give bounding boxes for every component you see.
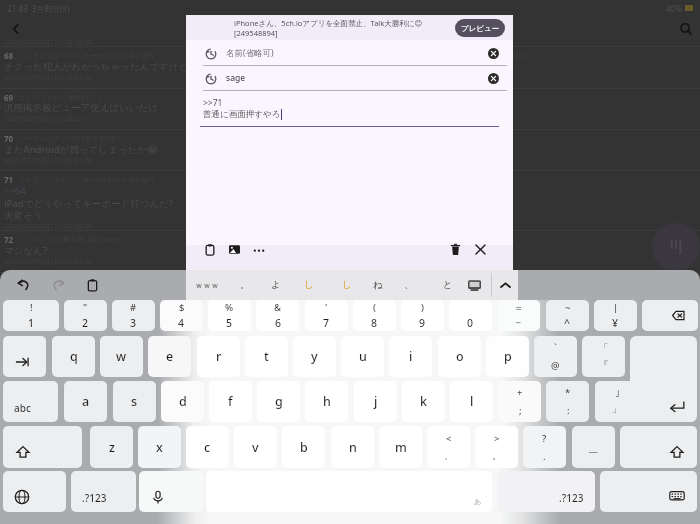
button[interactable]: 72 [0,231,700,272]
button[interactable]: .?123 [497,471,595,512]
button[interactable]: Redo [48,275,68,295]
button[interactable]: p [486,336,529,377]
button[interactable]: abc [3,381,58,422]
staticText: ' [325,301,328,314]
button[interactable]: 69 [0,89,700,129]
button[interactable]: sage [186,68,513,91]
button[interactable]: y [293,336,336,377]
button[interactable]: ( [353,300,396,331]
button[interactable]: o [438,336,481,377]
button[interactable]: Paste [201,241,218,258]
button[interactable]: Close [472,241,489,258]
button[interactable] [600,471,697,512]
button[interactable]: t [245,336,288,377]
staticText: m [395,439,407,456]
button[interactable]: と [435,276,461,294]
staticText: 2026/03/08(日) 21:40:26:46 [4,222,92,232]
button[interactable]: + [498,381,541,422]
staticText: よ [271,279,281,291]
button[interactable]: " [64,300,107,331]
button[interactable]: Emoji [465,276,483,294]
button[interactable]: q [52,336,95,377]
button[interactable] [630,336,697,422]
button[interactable]: ) [401,300,444,331]
button[interactable]: ね [365,276,391,294]
button[interactable]: ` [534,336,577,377]
staticText: < [446,432,452,445]
button[interactable]: * [546,381,589,422]
button[interactable]: e [148,336,191,377]
button[interactable] [139,471,203,512]
button[interactable]: > [475,426,518,468]
button[interactable]: f [209,381,252,422]
button[interactable]: し [334,276,360,294]
button[interactable] [620,426,697,468]
button[interactable]: < [427,426,470,468]
button[interactable]: 68 [0,47,700,88]
button[interactable]: v [234,426,277,468]
button[interactable]: Delete [447,241,464,258]
button[interactable]: 71 [0,171,700,230]
button[interactable]: % [208,300,251,331]
button[interactable]: 。 [232,276,258,294]
button[interactable]: Undo [14,275,34,295]
button[interactable] [186,15,513,40]
button[interactable]: Expand keyboard [496,276,514,294]
button[interactable]: Back [5,18,27,40]
button[interactable]: ~ [546,300,589,331]
button[interactable]: c [186,426,229,468]
button[interactable]: よ [263,276,289,294]
button[interactable]: l [450,381,493,422]
button[interactable]: し [296,276,322,294]
button[interactable]: & [256,300,299,331]
button[interactable] [3,426,82,468]
button[interactable]: 0 [449,300,492,331]
button[interactable]: Compose [652,223,700,271]
button[interactable] [3,336,46,377]
button[interactable]: More options [250,241,267,258]
button[interactable]: ' [305,300,348,331]
button[interactable]: w [100,336,143,377]
button[interactable]: ＝ [497,300,540,331]
button[interactable]: $ [160,300,203,331]
button[interactable]: Clear [487,47,500,60]
button[interactable]: r [197,336,240,377]
button[interactable]: 、 [396,276,422,294]
button[interactable]: Attach image [226,241,243,258]
staticText: g [275,393,283,410]
button[interactable]: m [379,426,422,468]
button[interactable]: 70 [0,130,700,170]
button[interactable]: g [257,381,300,422]
button[interactable]: n [331,426,374,468]
button[interactable]: d [161,381,204,422]
button[interactable]: ! [3,300,59,331]
button[interactable]: k [402,381,445,422]
button[interactable]: b [282,426,325,468]
button[interactable]: プレビュー [455,19,505,37]
button[interactable]: 名前(省略可) [186,43,513,66]
button[interactable]: z [90,426,133,468]
button[interactable]: a [64,381,107,422]
button[interactable]: u [341,336,384,377]
button[interactable]: j [354,381,397,422]
button[interactable]: ＿ [572,426,615,468]
button[interactable]: 「 [582,336,625,377]
button[interactable]: Search [675,18,697,40]
staticText: .?123 [559,491,584,505]
button[interactable]: # [112,300,155,331]
staticText: f [228,393,233,410]
button[interactable]: ｣ [595,381,638,422]
button[interactable]: x [138,426,181,468]
button[interactable]: ｗｗｗ [194,276,220,294]
button[interactable]: .?123 [71,471,136,512]
button[interactable] [3,471,66,512]
button[interactable]: Clipboard [82,275,102,295]
button[interactable]: s [113,381,156,422]
button[interactable]: | [594,300,637,331]
button[interactable]: ? [523,426,566,468]
button[interactable]: h [305,381,348,422]
button[interactable]: i [389,336,432,377]
button[interactable]: Clear [487,72,500,85]
button[interactable] [642,300,698,331]
